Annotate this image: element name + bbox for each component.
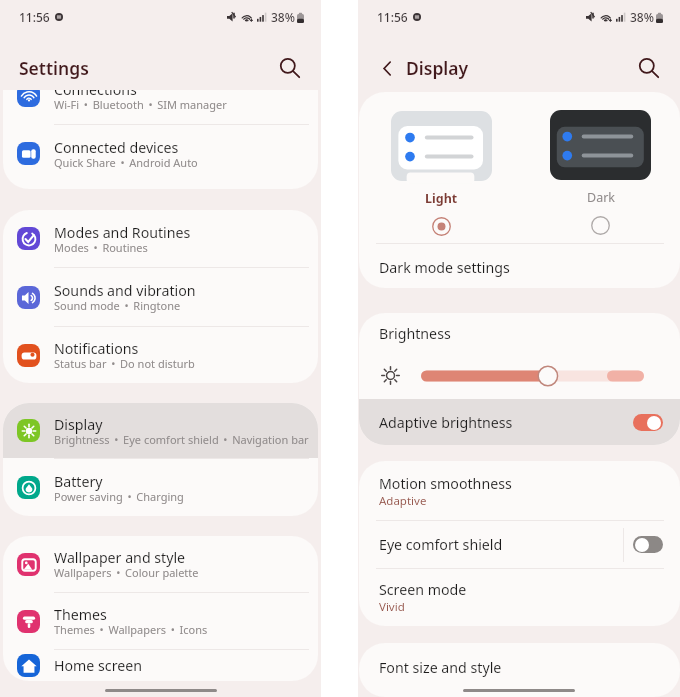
button[interactable]: Screen mode bbox=[359, 569, 680, 626]
staticText: Status bar • Do not disturb bbox=[54, 356, 195, 371]
staticText: 11:56 bbox=[19, 9, 50, 25]
staticText: Quick Share • Android Auto bbox=[54, 155, 198, 170]
staticText: Vivid bbox=[379, 599, 405, 615]
staticText: Wi-Fi • Bluetooth • SIM manager bbox=[54, 97, 227, 112]
button[interactable]: Sounds and vibration bbox=[3, 268, 318, 326]
staticText: Motion smoothness bbox=[379, 474, 512, 493]
button[interactable]: Turn on bbox=[633, 536, 663, 553]
staticText: Home screen bbox=[54, 656, 143, 675]
button[interactable]: Turn off bbox=[633, 414, 663, 431]
button[interactable]: Home screen bbox=[3, 650, 318, 681]
staticText: Wallpapers • Colour palette bbox=[54, 565, 199, 580]
staticText: Sound mode • Ringtone bbox=[54, 298, 181, 313]
button[interactable]: Display bbox=[3, 403, 318, 458]
button[interactable]: Battery bbox=[3, 459, 318, 516]
staticText: Display bbox=[54, 415, 103, 434]
button[interactable]: Themes bbox=[3, 593, 318, 649]
staticText: 11:56 bbox=[377, 9, 408, 25]
button[interactable]: Dark bbox=[550, 110, 651, 235]
staticText: Modes and Routines bbox=[54, 223, 191, 242]
staticText: Settings bbox=[19, 56, 89, 80]
staticText: Light bbox=[425, 190, 458, 207]
button[interactable]: Back bbox=[374, 55, 400, 81]
staticText: Display bbox=[406, 56, 469, 80]
button[interactable]: Wallpaper and style bbox=[3, 536, 318, 592]
button[interactable]: Search bbox=[272, 50, 308, 86]
staticText: Wallpaper and style bbox=[54, 548, 186, 567]
staticText: Sounds and vibration bbox=[54, 281, 196, 300]
button[interactable]: Connected devices bbox=[3, 125, 318, 182]
button[interactable]: Modes and Routines bbox=[3, 210, 318, 267]
button[interactable]: Light bbox=[391, 111, 492, 236]
staticText: Screen mode bbox=[379, 580, 467, 599]
staticText: Themes bbox=[54, 605, 107, 624]
staticText: Connections bbox=[54, 90, 137, 99]
button[interactable]: Search bbox=[631, 50, 667, 86]
button[interactable]: Motion smoothness bbox=[359, 461, 680, 520]
staticText: Brightness • Eye comfort shield • Naviga… bbox=[54, 432, 309, 447]
button[interactable]: Font size and style bbox=[359, 643, 680, 691]
staticText: Modes • Routines bbox=[54, 240, 148, 255]
staticText: Dark mode settings bbox=[379, 258, 510, 277]
button[interactable]: Eye comfort shield bbox=[359, 521, 680, 568]
staticText: Brightness bbox=[379, 324, 451, 343]
button[interactable]: Adaptive brightness bbox=[359, 399, 680, 445]
button[interactable]: Notifications bbox=[3, 327, 318, 383]
button[interactable]: Dark mode settings bbox=[359, 244, 680, 288]
staticText: 38% bbox=[271, 9, 295, 25]
staticText: Themes • Wallpapers • Icons bbox=[54, 622, 208, 637]
staticText: Font size and style bbox=[379, 658, 502, 677]
staticText: Power saving • Charging bbox=[54, 489, 184, 504]
staticText: Adaptive brightness bbox=[379, 413, 633, 432]
staticText: Adaptive bbox=[379, 493, 427, 509]
staticText: Dark bbox=[587, 189, 615, 206]
staticText: Connected devices bbox=[54, 138, 179, 157]
staticText: 38% bbox=[630, 9, 654, 25]
staticText: Battery bbox=[54, 472, 103, 491]
staticText: Notifications bbox=[54, 339, 139, 358]
button[interactable]: Connections bbox=[3, 90, 318, 124]
staticText: Eye comfort shield bbox=[379, 535, 623, 554]
